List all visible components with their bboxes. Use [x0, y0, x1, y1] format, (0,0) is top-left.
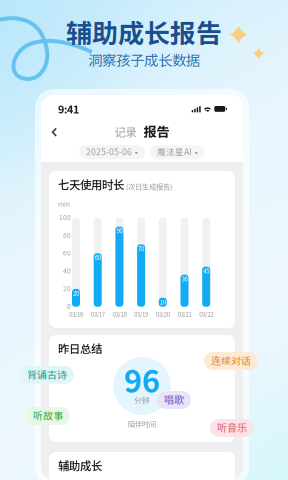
staticText: 听故事	[33, 408, 63, 422]
staticText: 陪伴时间	[128, 418, 156, 429]
staticText: 03/19	[134, 310, 148, 319]
staticText: 七天使用时长	[58, 176, 124, 192]
staticText: 辅助成长报告	[66, 13, 222, 50]
staticText: 听音乐	[217, 420, 247, 434]
staticText: 80	[63, 230, 71, 240]
staticText: 36	[181, 274, 187, 283]
staticText: 03/18	[112, 310, 126, 319]
staticText: 2025-05-06	[86, 145, 132, 158]
staticText: 洞察孩子成长数据	[88, 49, 200, 70]
button[interactable]: 魔法星AI	[150, 145, 205, 159]
staticText: (次日生成报告)	[126, 181, 172, 192]
staticText: 70	[138, 244, 144, 253]
staticText: 连续对话	[211, 353, 251, 367]
staticText: 昨日总结	[58, 340, 102, 356]
staticText: 记录	[114, 123, 136, 140]
staticText: 20	[73, 288, 79, 297]
staticText: 0	[67, 301, 71, 311]
staticText: 10	[160, 297, 166, 306]
button[interactable]: 听音乐	[210, 419, 254, 437]
button[interactable]: 连续对话	[204, 352, 258, 370]
button[interactable]: Back	[49, 125, 60, 140]
button[interactable]: 听故事	[26, 407, 70, 425]
staticText: 03/16	[69, 310, 83, 319]
staticText: 40	[63, 266, 71, 275]
staticText: 45	[203, 266, 209, 275]
staticText: 辅助成长	[58, 457, 102, 473]
staticText: 9:41	[58, 101, 79, 117]
staticText: 60	[95, 253, 101, 262]
staticText: 报告	[143, 121, 169, 141]
button[interactable]: 记录	[114, 126, 136, 136]
staticText: 唱歌	[164, 392, 184, 406]
button[interactable]: 报告	[143, 126, 169, 138]
staticText: 90	[116, 226, 122, 235]
staticText: 60	[63, 248, 71, 257]
staticText: 96	[124, 357, 160, 402]
staticText: min	[58, 199, 70, 209]
button[interactable]: 背诵古诗	[20, 366, 74, 384]
staticText: 背诵古诗	[27, 367, 67, 381]
staticText: 分钟	[134, 394, 150, 406]
button[interactable]: 唱歌	[157, 391, 191, 409]
staticText: 20	[63, 283, 71, 293]
button[interactable]: 2025-05-06	[79, 145, 145, 159]
staticText: 03/21	[177, 310, 191, 319]
staticText: 魔法星AI	[157, 145, 192, 158]
staticText: 03/17	[91, 310, 105, 319]
staticText: 03/22	[199, 310, 213, 319]
staticText: 100	[59, 212, 71, 222]
staticText: 03/20	[156, 310, 170, 319]
